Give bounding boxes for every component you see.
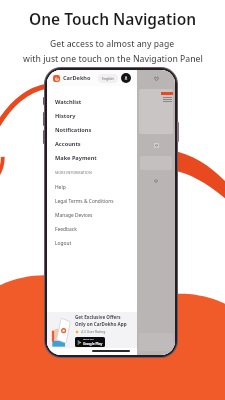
staticText: MORE INFORMATION: [55, 170, 92, 175]
button[interactable]: Logout: [47, 236, 137, 250]
staticText: CarDekho: [63, 74, 91, 82]
staticText: Accounts: [55, 140, 81, 148]
staticText: Manage Devices: [55, 212, 93, 219]
staticText: Legal Terms & Conditions: [55, 198, 114, 205]
staticText: Logout: [55, 240, 72, 247]
button[interactable]: Watchlist: [47, 95, 137, 109]
button[interactable]: English: [98, 74, 118, 83]
staticText: English: [102, 76, 114, 81]
staticText: Get access to almost any page: [50, 38, 175, 50]
button[interactable]: Legal Terms & Conditions: [47, 194, 137, 208]
button[interactable]: Notifications: [47, 123, 137, 137]
staticText: GET IT ON: [83, 338, 94, 341]
staticText: Get Exclusive Offers: [75, 314, 121, 320]
button[interactable]: History: [47, 109, 137, 123]
button[interactable]: Get it on Google Play: [75, 337, 105, 347]
button[interactable]: Make Payment: [47, 151, 137, 165]
button[interactable]: Help: [47, 180, 137, 194]
button[interactable]: Manage Devices: [47, 208, 137, 222]
button[interactable]: Profile: [121, 73, 131, 83]
staticText: Notifications: [55, 126, 92, 134]
staticText: One Touch Navigation: [29, 8, 197, 29]
staticText: Feedback: [55, 226, 77, 233]
staticText: Help: [55, 184, 66, 191]
staticText: Make Payment: [55, 154, 97, 162]
staticText: with just one touch on the Navigation Pa…: [23, 53, 203, 65]
button[interactable]: Feedback: [47, 222, 137, 236]
button[interactable]: Accounts: [47, 137, 137, 151]
button[interactable]: Get Exclusive Offers: [47, 312, 137, 348]
staticText: Google Play: [83, 341, 103, 346]
staticText: History: [55, 112, 76, 120]
staticText: Watchlist: [55, 98, 82, 106]
staticText: 4.3 User Rating: [81, 329, 106, 334]
staticText: Only on CarDekho App: [75, 321, 127, 327]
